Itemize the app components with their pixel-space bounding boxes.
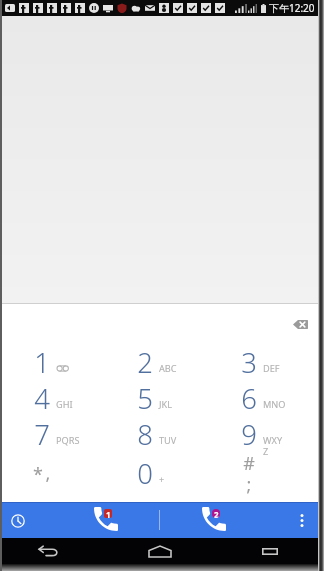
button[interactable]: * (4, 455, 107, 491)
staticText: * (24, 462, 52, 487)
staticText: 7 (28, 416, 56, 452)
staticText: PQRS (56, 434, 84, 447)
staticText: 5 (131, 380, 159, 416)
staticText: 2 (214, 509, 219, 518)
staticText: DEF (263, 362, 291, 375)
staticText: 9 (235, 416, 263, 452)
staticText: TUV (159, 434, 187, 447)
button[interactable]: 8 (107, 416, 210, 452)
staticText: , (34, 461, 62, 486)
staticText: ABC (159, 362, 187, 375)
button[interactable]: # (211, 455, 314, 491)
button[interactable]: 4 (4, 380, 107, 416)
button[interactable]: Recents (232, 538, 308, 564)
staticText: MNO (263, 398, 291, 411)
button[interactable]: Call history (0, 503, 36, 538)
button[interactable]: 9 (211, 416, 314, 452)
staticText: 1 (28, 344, 56, 380)
staticText: + (159, 473, 187, 486)
staticText: WXY Z (263, 434, 291, 457)
staticText: GHI (56, 398, 84, 411)
button[interactable]: More options (285, 503, 319, 538)
staticText: ; (235, 472, 263, 497)
button[interactable]: 7 (4, 416, 107, 452)
staticText: 1 (106, 509, 111, 518)
button[interactable]: 6 (211, 380, 314, 416)
button[interactable]: Dial SIM 1 (61, 503, 161, 538)
staticText: JKL (159, 398, 187, 411)
staticText: 4 (28, 380, 56, 416)
button[interactable]: 0 (107, 455, 210, 491)
button[interactable]: 3 (211, 344, 314, 380)
button[interactable]: Delete (287, 313, 313, 335)
staticText: 3 (235, 344, 263, 380)
button[interactable]: Home (122, 538, 198, 564)
staticText: 2 (131, 344, 159, 380)
button[interactable]: 5 (107, 380, 210, 416)
staticText: 下午12:20 (269, 1, 315, 15)
button[interactable]: 2 (107, 344, 210, 380)
staticText: 6 (235, 380, 263, 416)
staticText: 8 (131, 416, 159, 452)
staticText: 0 (131, 455, 159, 491)
button[interactable]: Dial SIM 2 (169, 503, 269, 538)
staticText: # (235, 451, 263, 476)
button[interactable]: Back (10, 538, 86, 564)
button[interactable]: 1 (4, 344, 107, 380)
